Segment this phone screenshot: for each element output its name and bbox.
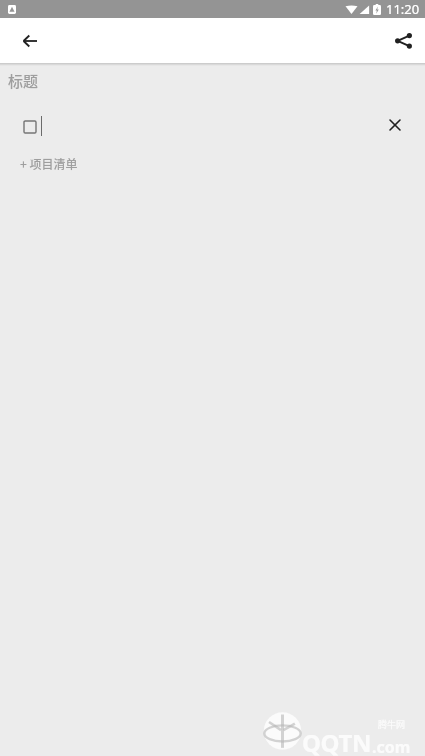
button[interactable]: Back	[0, 18, 59, 63]
button[interactable]: Share	[379, 18, 425, 63]
staticText: 标题	[8, 70, 39, 90]
button[interactable]: 标题	[8, 70, 39, 90]
button[interactable]: Remove item	[375, 111, 415, 141]
staticText: .com	[372, 736, 411, 756]
button[interactable]: + 项目清单	[20, 153, 78, 173]
staticText: QQTN	[302, 726, 372, 756]
staticText: 11:20	[386, 0, 420, 18]
button[interactable]: Toggle item	[23, 119, 36, 133]
staticText: + 项目清单	[20, 155, 78, 172]
staticText: 腾牛网	[378, 718, 406, 731]
